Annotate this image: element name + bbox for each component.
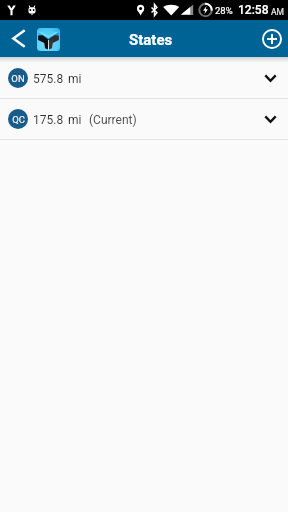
staticText: mi [68,113,82,127]
button[interactable]: App logo [37,28,60,51]
button[interactable]: Expand [253,99,287,139]
button[interactable]: Expand [253,57,287,98]
button[interactable]: Add state [256,20,288,57]
staticText: 28% [215,5,233,16]
staticText: mi [68,72,82,86]
staticText: 175.8 [33,113,64,127]
button[interactable]: Navigate up [5,20,33,57]
button[interactable]: ON [0,57,288,98]
staticText: 575.8 [33,72,64,86]
staticText: ON [11,73,25,84]
staticText: (Current) [89,113,137,127]
button[interactable]: QC [0,99,288,139]
staticText: QC [12,114,25,125]
staticText: AM [271,7,284,17]
staticText: States [129,31,173,49]
staticText: 12:58 [238,3,269,17]
